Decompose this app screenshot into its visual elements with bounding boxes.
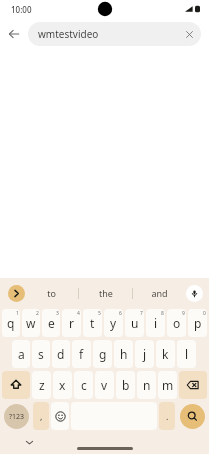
staticText: u [131,315,139,331]
button[interactable]: Backspace [179,371,207,399]
staticText: f [79,346,84,362]
button[interactable]: Search [180,404,205,429]
button[interactable]: p [188,309,207,337]
button[interactable]: the [79,280,132,306]
button[interactable]: More suggestions [8,285,25,302]
button[interactable]: c [74,371,93,399]
staticText: 2 [36,310,39,317]
button[interactable]: Shift [2,371,30,399]
button[interactable]: e [42,309,60,337]
button[interactable]: t [83,309,102,337]
staticText: 4 [77,310,80,317]
staticText: r [69,315,74,331]
staticText: k [162,346,169,362]
button[interactable]: and [133,280,186,306]
staticText: 1 [16,310,19,317]
button[interactable]: Clear [177,22,201,46]
staticText: q [7,315,15,331]
staticText: the [99,287,113,299]
button[interactable]: v [95,371,114,399]
button[interactable]: m [158,371,177,399]
staticText: to [47,287,56,299]
button[interactable]: wmtestvideo [28,22,201,46]
staticText: t [90,315,95,331]
button[interactable]: x [53,371,72,399]
staticText: p [194,315,202,331]
button[interactable]: r [62,309,81,337]
button[interactable]: Voice input [186,285,203,302]
staticText: j [143,346,147,362]
staticText: and [151,287,168,299]
staticText: 8 [161,310,164,317]
button[interactable]: j [135,340,154,368]
staticText: w [26,315,36,331]
staticText: 7 [140,310,143,317]
staticText: x [59,377,66,393]
staticText: n [143,377,151,393]
button[interactable]: h [114,340,133,368]
button[interactable]: b [116,371,135,399]
button[interactable]: to [25,280,78,306]
button[interactable]: n [137,371,156,399]
staticText: 3 [56,310,59,317]
staticText: z [39,377,45,393]
staticText: d [57,346,65,362]
button[interactable]: Period [159,402,175,430]
button[interactable]: s [32,340,50,368]
staticText: h [120,346,128,362]
button[interactable]: Back [0,18,28,50]
button[interactable]: w [22,309,40,337]
button[interactable]: q [2,309,20,337]
staticText: 5 [98,310,101,317]
staticText: e [48,315,55,331]
button[interactable]: a [12,340,30,368]
staticText: a [18,346,25,362]
staticText: . [166,410,169,422]
button[interactable]: i [146,309,165,337]
staticText: b [122,377,130,393]
staticText: 0 [203,310,206,317]
staticText: 6 [119,310,122,317]
staticText: 10:00 [11,4,32,15]
button[interactable]: k [156,340,175,368]
staticText: c [81,377,87,393]
button[interactable]: Comma [33,402,49,430]
staticText: , [40,410,43,422]
staticText: l [185,346,189,362]
button[interactable]: Hide keyboard [22,435,36,449]
staticText: wmtestvideo [38,27,177,41]
button[interactable]: l [177,340,196,368]
staticText: i [154,315,158,331]
staticText: g [99,346,107,362]
staticText: m [162,377,174,393]
button[interactable]: z [32,371,51,399]
button[interactable]: u [125,309,144,337]
button[interactable]: f [72,340,91,368]
button[interactable]: d [52,340,70,368]
staticText: s [38,346,44,362]
button[interactable]: Emoji [51,402,69,430]
staticText: 9 [182,310,185,317]
staticText: o [173,315,181,331]
button[interactable]: g [93,340,112,368]
button[interactable]: y [104,309,123,337]
staticText: y [110,315,117,331]
button[interactable]: o [167,309,186,337]
button[interactable]: ?123 [4,404,29,429]
staticText: v [101,377,108,393]
staticText: ?123 [9,412,25,422]
